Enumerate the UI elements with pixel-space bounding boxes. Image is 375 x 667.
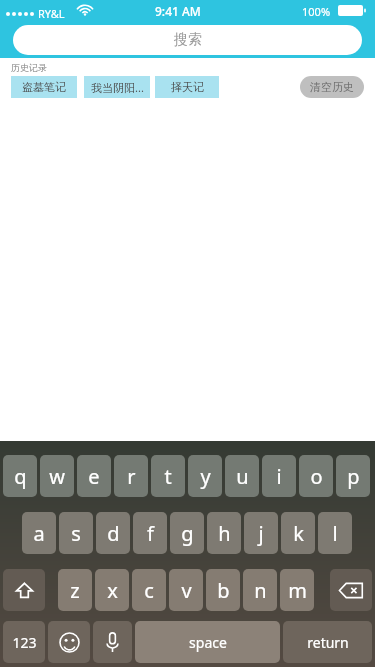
button[interactable]: e bbox=[77, 455, 111, 497]
staticText: g bbox=[181, 520, 194, 547]
staticText: x bbox=[107, 577, 118, 604]
button[interactable]: j bbox=[244, 512, 278, 554]
button[interactable]: z bbox=[58, 569, 92, 611]
staticText: o bbox=[310, 463, 323, 490]
button[interactable]: h bbox=[207, 512, 241, 554]
button[interactable]: t bbox=[151, 455, 185, 497]
button[interactable]: space bbox=[135, 621, 280, 663]
staticText: i bbox=[276, 463, 282, 490]
button[interactable]: b bbox=[206, 569, 240, 611]
button[interactable]: m bbox=[280, 569, 314, 611]
staticText: 100% bbox=[302, 4, 331, 19]
staticText: u bbox=[236, 463, 249, 490]
staticText: 我当阴阳... bbox=[91, 80, 144, 95]
staticText: j bbox=[258, 520, 264, 547]
button[interactable]: k bbox=[281, 512, 315, 554]
button[interactable]: 清空历史 bbox=[300, 76, 364, 98]
button[interactable]: u bbox=[225, 455, 259, 497]
button[interactable]: 盗墓笔记 bbox=[11, 76, 77, 98]
button[interactable]: y bbox=[188, 455, 222, 497]
button[interactable]: i bbox=[262, 455, 296, 497]
staticText: z bbox=[70, 577, 80, 604]
staticText: r bbox=[127, 463, 136, 490]
staticText: e bbox=[88, 463, 100, 490]
button[interactable]: 123 bbox=[3, 621, 45, 663]
staticText: a bbox=[33, 520, 45, 547]
staticText: RY&L bbox=[38, 6, 65, 21]
staticText: p bbox=[347, 463, 360, 490]
staticText: m bbox=[288, 577, 307, 604]
button[interactable]: 搜索 bbox=[13, 25, 362, 55]
staticText: v bbox=[181, 577, 192, 604]
button[interactable]: a bbox=[22, 512, 56, 554]
staticText: k bbox=[293, 520, 304, 547]
button[interactable]: return bbox=[283, 621, 372, 663]
staticText: 9:41 AM bbox=[155, 3, 201, 19]
button[interactable]: 择天记 bbox=[155, 76, 219, 98]
staticText: return bbox=[307, 633, 349, 652]
staticText: y bbox=[200, 463, 211, 490]
button[interactable]: o bbox=[299, 455, 333, 497]
staticText: b bbox=[217, 577, 230, 604]
staticText: 123 bbox=[12, 633, 37, 652]
button[interactable]: r bbox=[114, 455, 148, 497]
button[interactable]: Backspace bbox=[330, 569, 372, 611]
button[interactable]: s bbox=[59, 512, 93, 554]
button[interactable]: Voice input bbox=[93, 621, 132, 663]
staticText: q bbox=[14, 463, 27, 490]
staticText: 清空历史 bbox=[310, 80, 354, 94]
button[interactable]: d bbox=[96, 512, 130, 554]
button[interactable]: v bbox=[169, 569, 203, 611]
button[interactable]: c bbox=[132, 569, 166, 611]
button[interactable]: Shift bbox=[3, 569, 45, 611]
button[interactable]: Emoji bbox=[48, 621, 90, 663]
button[interactable]: w bbox=[40, 455, 74, 497]
staticText: space bbox=[189, 633, 227, 652]
staticText: 择天记 bbox=[171, 80, 204, 94]
staticText: h bbox=[218, 520, 231, 547]
button[interactable]: l bbox=[318, 512, 352, 554]
staticText: 搜索 bbox=[174, 31, 202, 49]
staticText: n bbox=[254, 577, 267, 604]
staticText: s bbox=[71, 520, 81, 547]
button[interactable]: p bbox=[336, 455, 370, 497]
button[interactable]: f bbox=[133, 512, 167, 554]
button[interactable]: 我当阴阳... bbox=[84, 76, 150, 98]
staticText: 历史记录 bbox=[11, 62, 47, 73]
staticText: c bbox=[144, 577, 154, 604]
staticText: d bbox=[107, 520, 120, 547]
button[interactable]: n bbox=[243, 569, 277, 611]
button[interactable]: x bbox=[95, 569, 129, 611]
button[interactable]: q bbox=[3, 455, 37, 497]
button[interactable]: g bbox=[170, 512, 204, 554]
staticText: w bbox=[49, 463, 65, 490]
staticText: 盗墓笔记 bbox=[22, 80, 66, 94]
staticText: t bbox=[164, 463, 172, 490]
staticText: f bbox=[147, 520, 154, 547]
staticText: l bbox=[332, 520, 338, 547]
